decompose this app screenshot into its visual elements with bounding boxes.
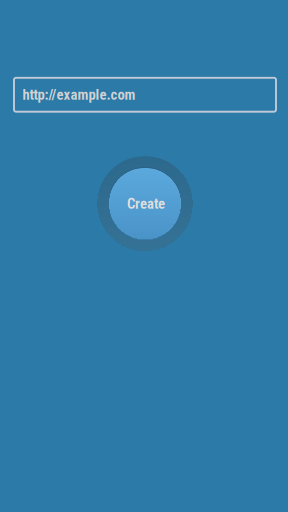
- button[interactable]: Create: [98, 156, 192, 251]
- staticText: Create: [127, 195, 165, 212]
- staticText: http://example.com: [22, 86, 135, 103]
- button[interactable]: URL: [14, 78, 276, 112]
